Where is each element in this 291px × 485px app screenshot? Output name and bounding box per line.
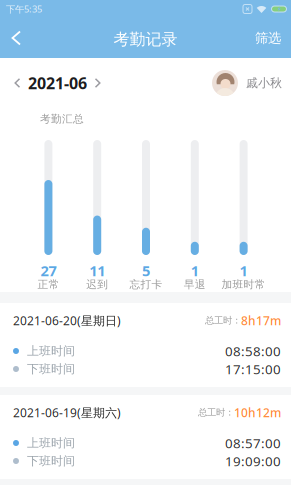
staticText: 2021-06-20(星期日) bbox=[13, 312, 121, 328]
staticText: 总工时： bbox=[205, 315, 241, 326]
staticText: 2021-06 bbox=[28, 72, 87, 94]
staticText: 总工时： bbox=[198, 407, 234, 418]
staticText: 考勤汇总 bbox=[40, 112, 84, 125]
staticText: 10h12m bbox=[234, 404, 281, 420]
staticText: 08:58:00 bbox=[225, 342, 281, 360]
staticText: 17:15:00 bbox=[225, 360, 281, 378]
staticText: 11 bbox=[89, 261, 105, 280]
button[interactable]: 上个月 bbox=[0, 70, 21, 96]
staticText: 1 bbox=[240, 261, 248, 280]
staticText: 考勤记录 bbox=[113, 30, 177, 49]
staticText: 下班时间 bbox=[27, 362, 75, 376]
staticText: 加班时常 bbox=[222, 278, 266, 291]
button[interactable]: 下个月 bbox=[94, 70, 101, 96]
staticText: 下班时间 bbox=[27, 454, 75, 468]
staticText: 19:09:00 bbox=[225, 452, 281, 470]
staticText: 8h17m bbox=[241, 312, 281, 328]
staticText: 上班时间 bbox=[27, 436, 75, 450]
staticText: 1 bbox=[191, 261, 199, 280]
staticText: 下午5:35 bbox=[6, 3, 42, 15]
staticText: 08:57:00 bbox=[225, 434, 281, 452]
staticText: 2021-06-19(星期六) bbox=[13, 404, 121, 420]
button[interactable]: 返回 bbox=[0, 18, 29, 57]
staticText: 正常 bbox=[37, 278, 59, 291]
button[interactable]: 筛选 bbox=[247, 18, 291, 58]
staticText: 早退 bbox=[184, 278, 206, 291]
staticText: 5 bbox=[142, 261, 150, 280]
staticText: 筛选 bbox=[255, 30, 281, 46]
staticText: 忘打卡 bbox=[129, 278, 162, 291]
staticText: 迟到 bbox=[86, 278, 108, 291]
button[interactable]: 戚小秋 bbox=[212, 70, 291, 96]
staticText: 27 bbox=[40, 261, 56, 280]
staticText: 戚小秋 bbox=[246, 76, 282, 90]
staticText: 上班时间 bbox=[27, 344, 75, 358]
